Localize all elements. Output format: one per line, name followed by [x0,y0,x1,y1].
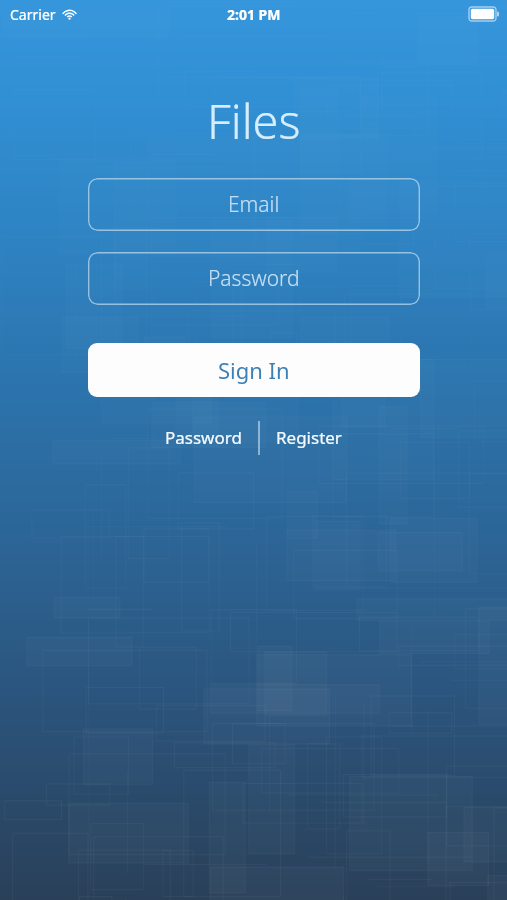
staticText: Password [165,426,242,449]
staticText: Files [207,89,301,153]
staticText: Email [228,190,280,219]
staticText: Password [208,264,300,293]
button[interactable]: Password [149,417,258,458]
button[interactable]: Password [88,252,420,305]
button[interactable]: Email [88,178,420,231]
staticText: Carrier [10,5,56,24]
staticText: Register [276,426,342,449]
button[interactable]: Register [260,417,358,458]
staticText: 2:01 PM [227,5,281,24]
staticText: Sign In [218,355,290,385]
button[interactable]: Sign In [88,343,420,397]
